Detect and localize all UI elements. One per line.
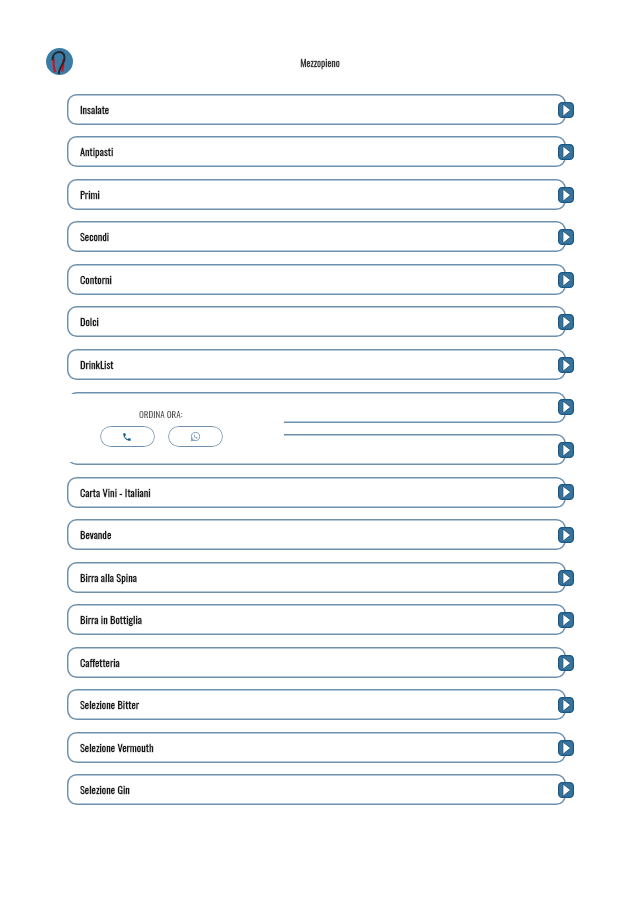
staticText: Insalate [80, 102, 110, 117]
button[interactable]: Apri DrinkList [558, 357, 574, 373]
button[interactable]: Mezzopieno [244, 55, 396, 71]
staticText: Selezione Vermouth [80, 740, 154, 755]
staticText: Mezzopieno [300, 56, 340, 70]
staticText: Selezione Gin [80, 782, 130, 797]
button[interactable]: Dolci [67, 306, 566, 337]
staticText: DrinkList [80, 357, 114, 372]
button[interactable]: Apri Primi [558, 187, 574, 203]
button[interactable]: Birra in Bottiglia [67, 604, 566, 635]
button[interactable]: Apri Carta Vini - Francesi [558, 399, 574, 415]
button[interactable]: Chiama [100, 426, 155, 447]
button[interactable]: Carta Vini - Italiani [67, 477, 566, 508]
staticText: Carta Vini - Francesi [80, 400, 156, 415]
button[interactable]: Contorni [67, 264, 566, 295]
button[interactable]: Secondi [67, 221, 566, 252]
staticText: Selezione Bitter [80, 697, 140, 712]
button[interactable]: Apri Dolci [558, 314, 574, 330]
button[interactable]: Bevande [67, 519, 566, 550]
button[interactable]: Apri Insalate [558, 102, 574, 118]
button[interactable]: Insalate [67, 94, 566, 125]
button[interactable]: Apri Caffetteria [558, 655, 574, 671]
staticText: Birra alla Spina [80, 570, 137, 585]
button[interactable]: Apri Selezione Bitter [558, 697, 574, 713]
button[interactable]: Apri Birra alla Spina [558, 570, 574, 586]
button[interactable]: Apri Selezione Vermouth [558, 740, 574, 756]
button[interactable]: DrinkList [67, 349, 566, 380]
staticText: Contorni [80, 272, 112, 287]
staticText: Antipasti [80, 144, 114, 159]
button[interactable]: Mezzopieno logo [46, 48, 73, 75]
button[interactable]: Selezione Vermouth [67, 732, 566, 763]
staticText: Birra in Bottiglia [80, 612, 143, 627]
staticText: Caffetteria [80, 655, 120, 670]
staticText: Carta Vini - Italiani [80, 485, 151, 500]
button[interactable]: WhatsApp [168, 426, 223, 447]
button[interactable]: Selezione Bitter [67, 689, 566, 720]
button[interactable]: Selezione Gin [67, 774, 566, 805]
button[interactable]: Birra alla Spina [67, 562, 566, 593]
staticText: ORDINA ORA: [139, 407, 183, 420]
button[interactable]: Apri Antipasti [558, 144, 574, 160]
button[interactable]: Carta Vini - Francesi [67, 392, 566, 423]
button[interactable]: Carta Vini - Bollicine [67, 434, 566, 465]
staticText: Dolci [80, 314, 99, 329]
button[interactable]: Apri Carta Vini - Bollicine [558, 442, 574, 458]
button[interactable]: Apri Selezione Gin [558, 782, 574, 798]
staticText: Primi [80, 187, 100, 202]
staticText: Secondi [80, 229, 110, 244]
button[interactable]: Apri Contorni [558, 272, 574, 288]
button[interactable]: Primi [67, 179, 566, 210]
button[interactable]: Apri Bevande [558, 527, 574, 543]
button[interactable]: Apri Carta Vini - Italiani [558, 484, 574, 500]
button[interactable]: Antipasti [67, 136, 566, 167]
staticText: Carta Vini - Bollicine [80, 442, 158, 457]
button[interactable]: Caffetteria [67, 647, 566, 678]
button[interactable]: Apri Birra in Bottiglia [558, 612, 574, 628]
button[interactable]: Apri Secondi [558, 229, 574, 245]
staticText: Bevande [80, 527, 112, 542]
